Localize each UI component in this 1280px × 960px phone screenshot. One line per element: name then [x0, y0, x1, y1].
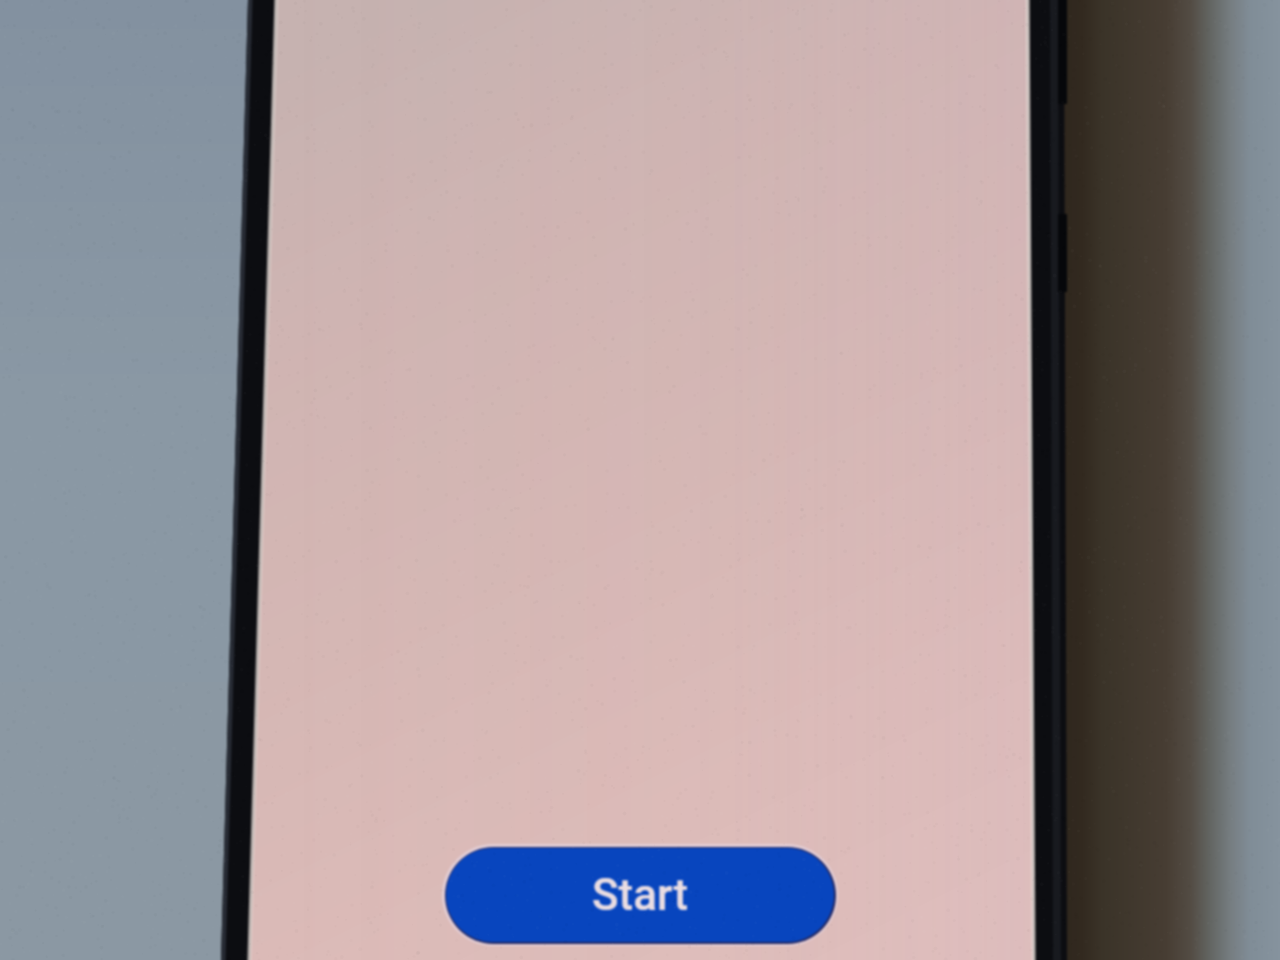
staticText: Start	[592, 869, 689, 921]
button[interactable]: Start	[446, 848, 834, 942]
